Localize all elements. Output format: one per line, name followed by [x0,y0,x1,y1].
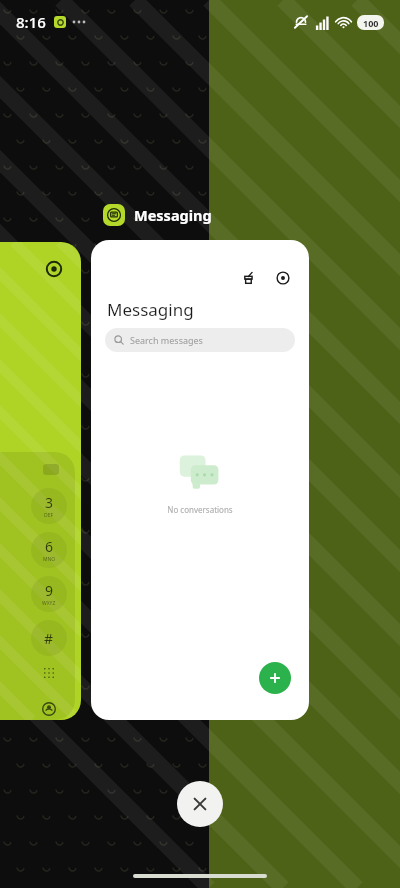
button[interactable]: Clear all [177,781,223,827]
staticText: 6 [45,537,54,556]
button[interactable]: 9 [31,576,67,612]
button[interactable]: Clean up [239,268,259,288]
staticText: 8:16 [16,12,46,32]
button[interactable]: Settings [273,268,293,288]
staticText: 100 [363,17,379,29]
staticText: 9 [45,581,54,600]
staticText: Search messages [130,334,203,346]
button[interactable]: New conversation [259,662,291,694]
button[interactable]: 3 [31,488,67,524]
button[interactable]: Settings [0,242,81,720]
button[interactable]: # [31,620,67,656]
button[interactable]: 6 [31,532,67,568]
staticText: 3 [45,493,54,512]
staticText: No conversations [167,504,233,515]
staticText: Contacts [35,719,64,720]
staticText: DEF [44,512,54,519]
button[interactable]: Search messages [105,328,295,352]
staticText: Messaging [134,205,212,225]
staticText: Messaging [107,298,194,321]
button[interactable]: Settings [45,260,63,278]
staticText: WXYZ [42,600,56,607]
staticText: # [44,629,54,648]
staticText: MNO [43,556,56,563]
button[interactable]: Clean up [91,240,309,720]
